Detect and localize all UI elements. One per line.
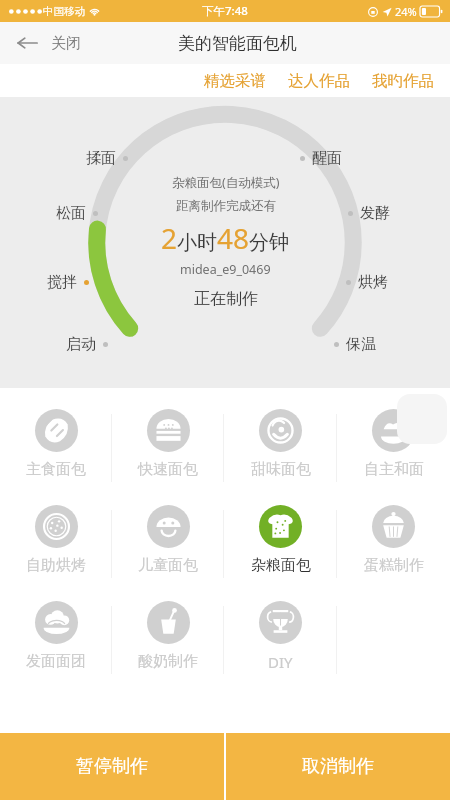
staticText: midea_e9_0469 (180, 261, 271, 278)
staticText: 醒面 (312, 149, 342, 168)
staticText: 24% (395, 4, 417, 19)
button[interactable]: 自助烘烤 (0, 496, 112, 592)
staticText: 取消制作 (302, 755, 374, 778)
staticText: 美的智能面包机 (178, 33, 297, 54)
staticText: 发酵 (360, 204, 390, 223)
button[interactable]: 快速面包 (112, 400, 224, 496)
button[interactable]: 杂粮面包 (224, 496, 337, 592)
staticText: 甜味面包 (251, 460, 311, 479)
staticText: 蛋糕制作 (364, 556, 424, 575)
staticText: 暂停制作 (76, 755, 148, 778)
button[interactable]: 主食面包 (0, 400, 112, 496)
button[interactable]: 儿童面包 (112, 496, 224, 592)
button[interactable]: 我旳作品 (361, 67, 445, 95)
staticText: 2小时48分钟 (161, 219, 290, 257)
staticText: 关闭 (51, 34, 81, 53)
button[interactable]: 甜味面包 (224, 400, 337, 496)
staticText: 杂粮面包(自动模式) (172, 174, 280, 191)
button[interactable]: 精选采谱 (193, 67, 277, 95)
staticText: 下午7:48 (202, 3, 248, 19)
staticText: 揉面 (86, 149, 116, 168)
staticText: 自主和面 (364, 460, 424, 479)
staticText: 快速面包 (138, 460, 198, 479)
staticText: 搅拌 (47, 273, 77, 292)
staticText: DIY (268, 652, 293, 672)
button[interactable]: Assistive touch (397, 394, 447, 444)
staticText: 烘烤 (358, 273, 388, 292)
button[interactable]: 取消制作 (226, 733, 450, 800)
staticText: 主食面包 (26, 460, 86, 479)
button[interactable]: 发面面团 (0, 592, 112, 688)
staticText: 儿童面包 (138, 556, 198, 575)
staticText: 启动 (66, 335, 96, 354)
staticText: 距离制作完成还有 (176, 198, 276, 214)
other: Back (16, 32, 38, 54)
button[interactable]: DIY (224, 592, 337, 688)
staticText: 自助烘烤 (26, 556, 86, 575)
staticText: 保温 (346, 335, 376, 354)
button[interactable]: 达人作品 (277, 67, 361, 95)
staticText: 我旳作品 (372, 71, 434, 91)
staticText: 中国移动 (43, 5, 85, 18)
staticText: 精选采谱 (204, 71, 266, 91)
staticText: 杂粮面包 (251, 556, 311, 575)
staticText: 松面 (56, 204, 86, 223)
staticText: 酸奶制作 (138, 652, 198, 671)
button[interactable]: 自主和面 (337, 400, 450, 496)
staticText: 发面面团 (26, 652, 86, 671)
staticText: 达人作品 (288, 71, 350, 91)
button[interactable]: 蛋糕制作 (337, 496, 450, 592)
button[interactable]: 酸奶制作 (112, 592, 224, 688)
staticText: 正在制作 (194, 289, 258, 309)
button[interactable]: 暂停制作 (0, 733, 224, 800)
button[interactable]: Back (12, 28, 85, 58)
